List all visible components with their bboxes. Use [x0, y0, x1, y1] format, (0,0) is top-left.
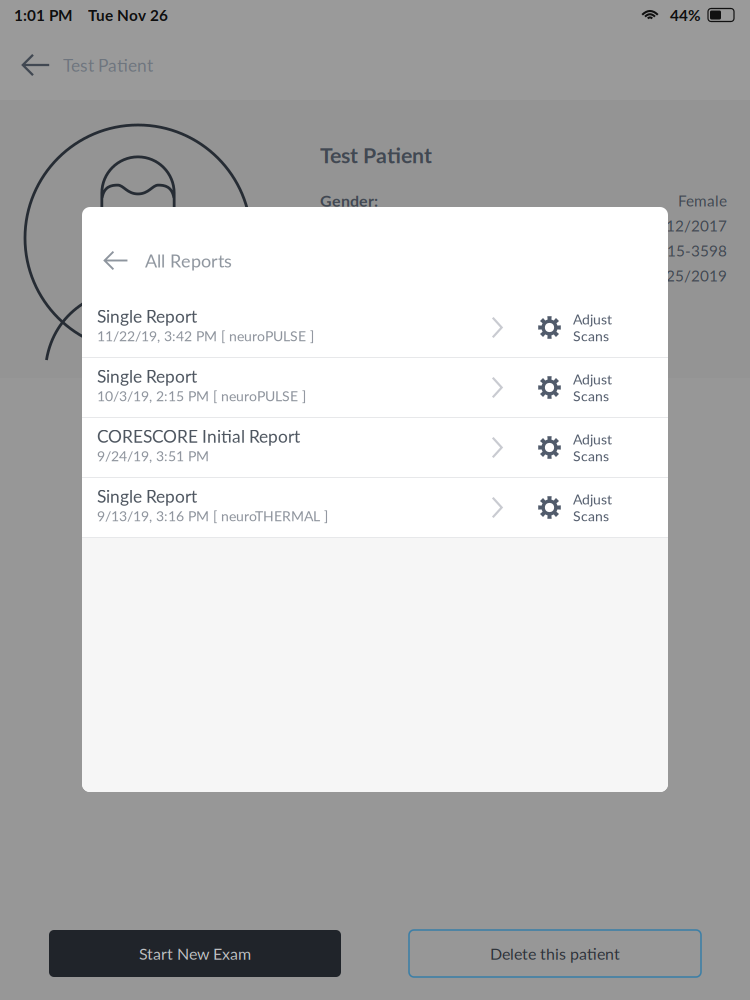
staticText: Adjust Scans — [573, 431, 612, 464]
button[interactable]: Adjust Scans — [522, 298, 668, 357]
button[interactable]: Back — [0, 37, 63, 93]
button[interactable]: CORESCORE Initial Report — [82, 418, 522, 477]
staticText: 1:01 PM — [14, 6, 72, 24]
staticText: CORESCORE Initial Report — [97, 426, 300, 446]
staticText: Tue Nov 26 — [88, 6, 168, 24]
staticText: (555) 315-3598 — [619, 241, 727, 260]
staticText: 44% — [670, 6, 701, 24]
button[interactable]: Adjust Scans — [522, 358, 668, 417]
staticText: Female — [678, 191, 727, 210]
staticText: 11/22/19, 3:42 PM [ neuroPULSE ] — [97, 327, 314, 344]
staticText: Test Patient — [320, 142, 432, 168]
button[interactable]: Adjust Scans — [522, 478, 668, 537]
button[interactable]: Single Report — [82, 298, 522, 357]
staticText: 11/25/2019 — [641, 266, 727, 285]
button[interactable]: Start New Exam — [49, 930, 341, 977]
button[interactable]: Single Report — [82, 478, 522, 537]
staticText: Test Patient — [63, 55, 153, 75]
button[interactable]: Single Report — [82, 358, 522, 417]
staticText: Single Report — [97, 306, 197, 326]
staticText: Delete this patient — [490, 944, 620, 963]
staticText: Adjust Scans — [573, 371, 612, 404]
staticText: 9/13/19, 3:16 PM [ neuroTHERMAL ] — [97, 507, 328, 524]
staticText: 8/12/2017 — [650, 216, 727, 235]
button[interactable]: Adjust Scans — [522, 418, 668, 477]
staticText: All Reports — [145, 250, 232, 271]
button[interactable]: Back — [82, 234, 145, 286]
staticText: 10/3/19, 2:15 PM [ neuroPULSE ] — [97, 387, 306, 404]
staticText: Single Report — [97, 366, 197, 386]
button[interactable]: Delete this patient — [409, 930, 701, 977]
staticText: Adjust Scans — [573, 491, 612, 524]
staticText: Adjust Scans — [573, 311, 612, 344]
staticText: 9/24/19, 3:51 PM — [97, 447, 209, 464]
staticText: Single Report — [97, 486, 197, 506]
staticText: Start New Exam — [139, 944, 251, 963]
staticText: Gender: — [320, 191, 378, 210]
